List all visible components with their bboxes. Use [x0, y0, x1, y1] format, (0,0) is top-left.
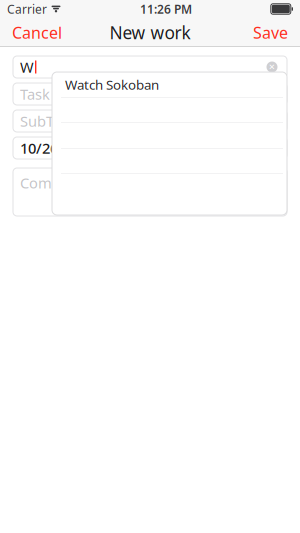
button[interactable]: Task — [13, 83, 287, 105]
button[interactable]: Cancel — [4, 16, 70, 49]
staticText: W — [20, 57, 34, 77]
staticText: Save — [253, 22, 288, 43]
button[interactable]: Clear text — [264, 59, 280, 75]
button[interactable]: SubTask — [13, 110, 287, 132]
staticText: 11:26 PM — [140, 1, 192, 17]
button[interactable]: Save — [245, 16, 296, 49]
button[interactable]: Comment — [13, 168, 287, 216]
staticText: Comment — [20, 173, 88, 192]
button[interactable]: W — [13, 56, 287, 78]
staticText: 10/26/2015 — [20, 138, 96, 158]
staticText: Task — [20, 84, 50, 104]
staticText: Watch Sokoban — [65, 76, 159, 93]
staticText: SubTask — [20, 111, 76, 131]
staticText: New work — [109, 21, 190, 44]
staticText: Carrier — [7, 1, 47, 17]
staticText: ✕ — [268, 62, 275, 72]
staticText: Cancel — [12, 22, 62, 43]
button[interactable]: 10/26/2015 — [13, 137, 287, 159]
button[interactable]: Watch Sokoban — [52, 72, 287, 97]
button[interactable]: Suggestion — [52, 148, 287, 173]
